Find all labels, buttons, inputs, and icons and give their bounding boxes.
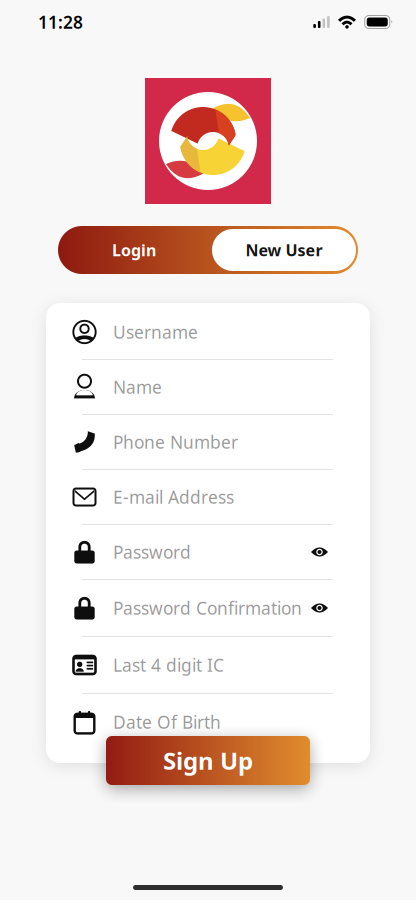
staticText: Username xyxy=(113,320,198,343)
button[interactable]: E-mail Address xyxy=(46,470,370,524)
button[interactable]: New User xyxy=(212,229,356,271)
staticText: E-mail Address xyxy=(113,485,234,508)
staticText: Sign Up xyxy=(163,745,253,776)
button[interactable]: Last 4 digit IC xyxy=(46,637,370,693)
button[interactable]: Username xyxy=(46,305,370,359)
staticText: Phone Number xyxy=(113,430,238,453)
staticText: 11:28 xyxy=(38,10,83,33)
button[interactable]: Password Confirmation xyxy=(46,580,370,636)
button[interactable]: Sign Up xyxy=(106,736,310,785)
staticText: Date Of Birth xyxy=(113,710,221,733)
staticText: Name xyxy=(113,375,162,398)
staticText: Last 4 digit IC xyxy=(113,653,224,676)
button[interactable]: Name xyxy=(46,360,370,414)
button[interactable]: Phone Number xyxy=(46,415,370,469)
button[interactable]: Login xyxy=(58,226,210,274)
staticText: New User xyxy=(245,239,322,261)
staticText: Login xyxy=(112,239,156,261)
button[interactable]: Password xyxy=(46,525,370,579)
button[interactable]: Date Of Birth xyxy=(46,694,370,750)
staticText: Password Confirmation xyxy=(113,596,302,619)
staticText: Password xyxy=(113,540,191,563)
